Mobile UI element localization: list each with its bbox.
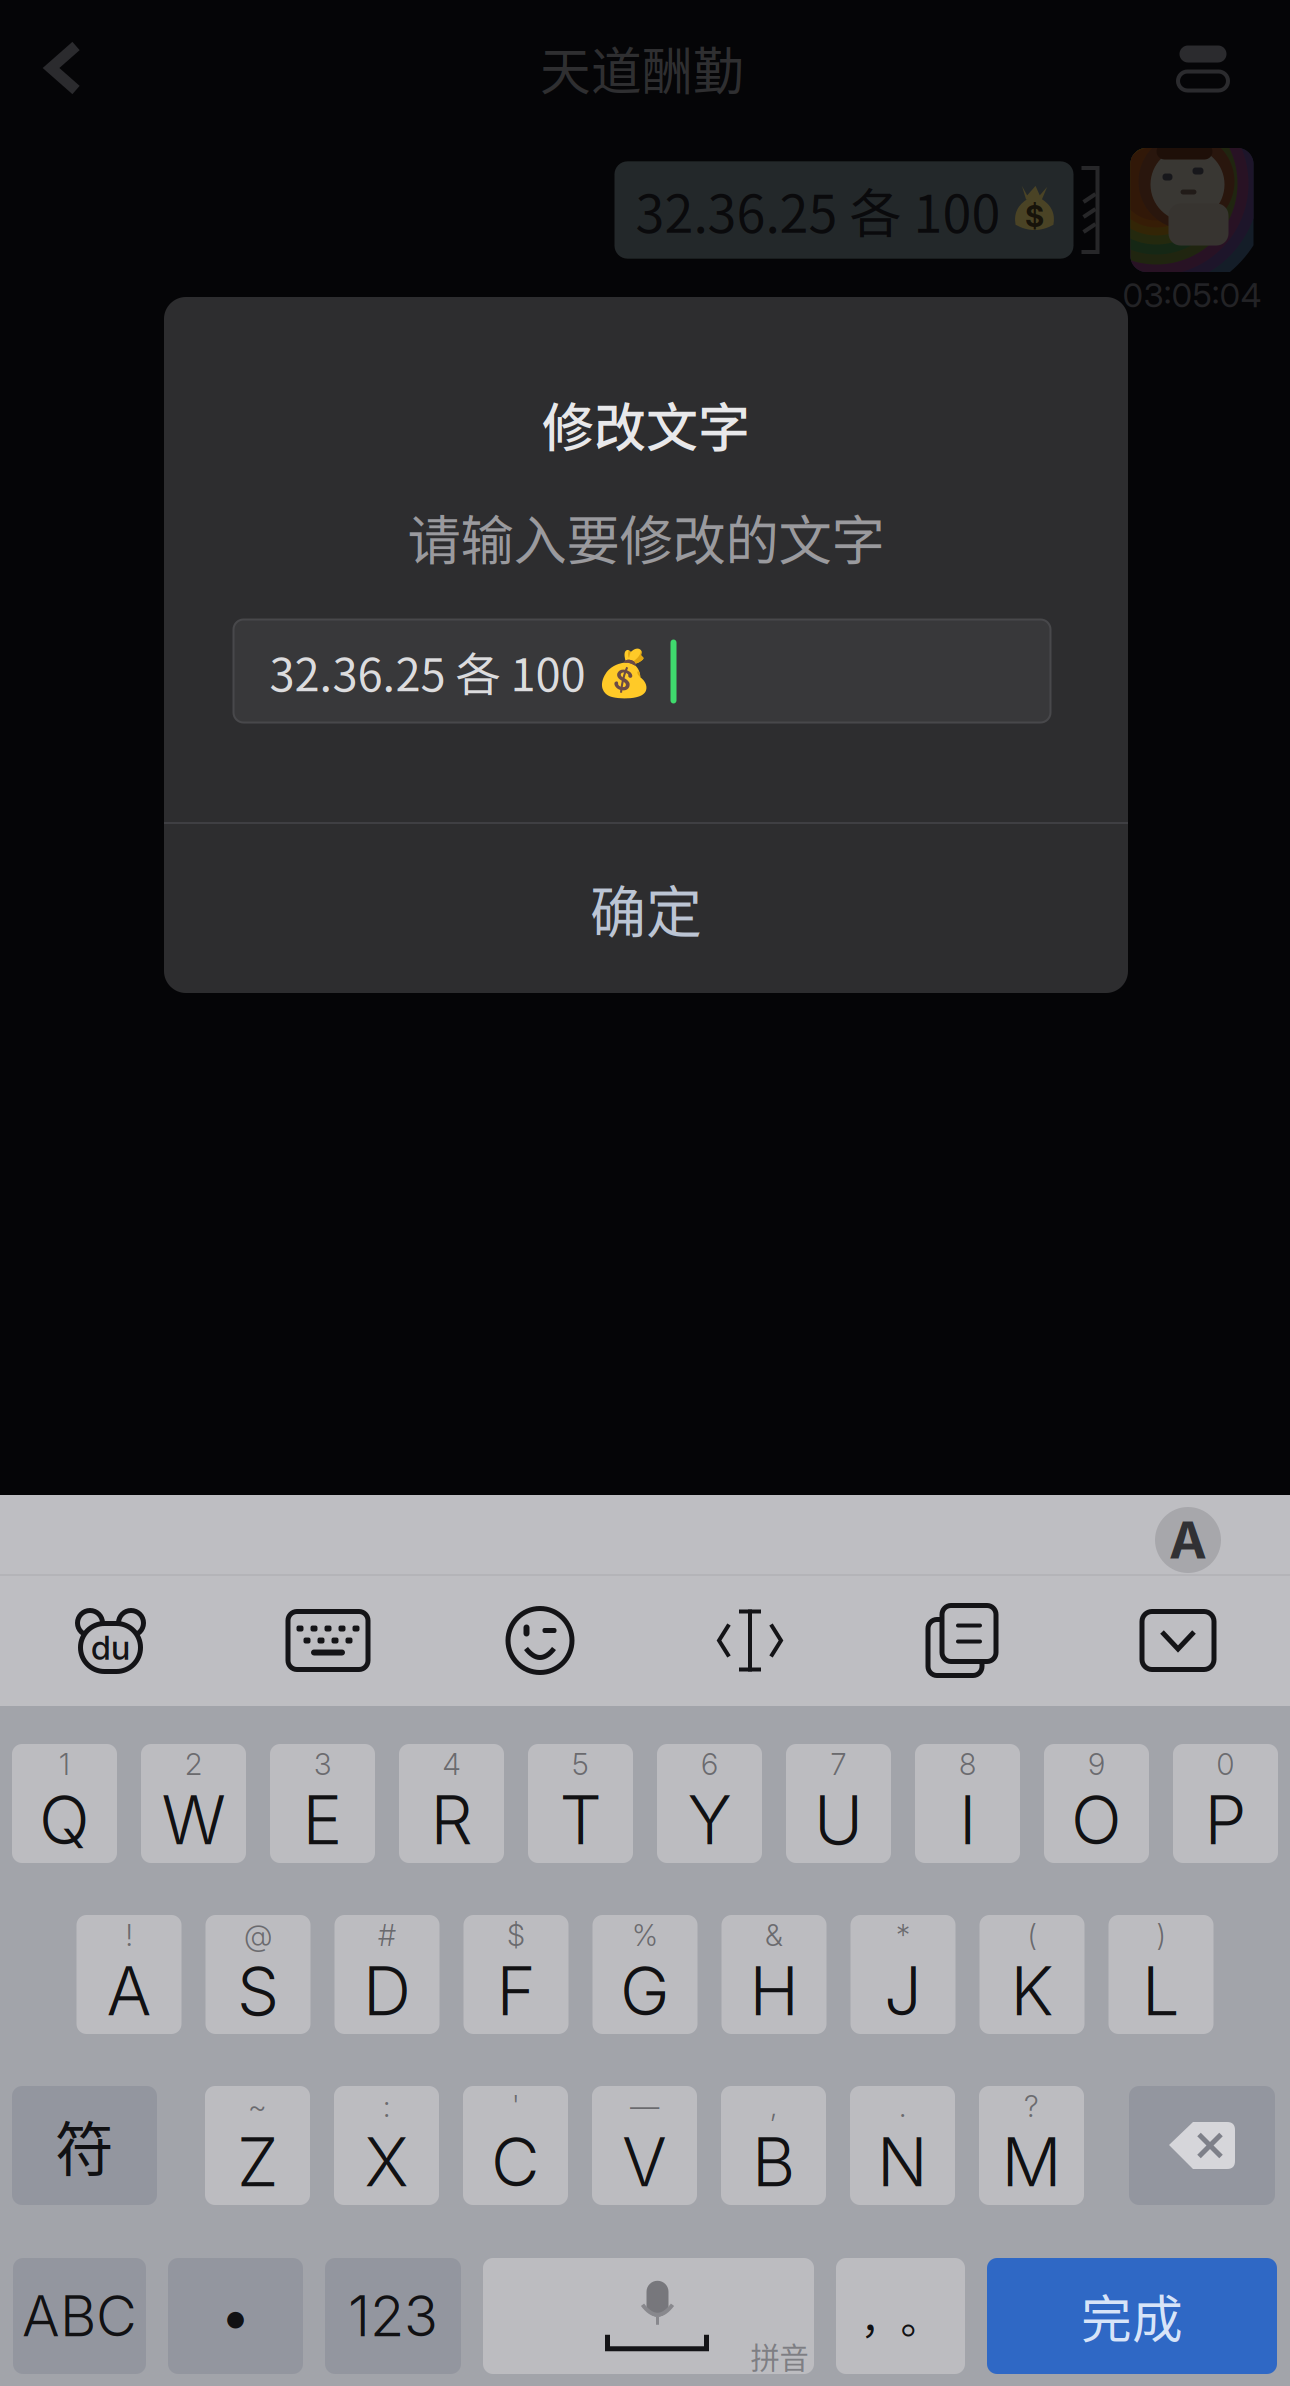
staticText: 3 [314, 1747, 331, 1782]
button[interactable]: % [592, 1915, 697, 2034]
button[interactable]: ? [979, 2086, 1084, 2205]
button[interactable]: Clipboard [882, 1580, 1042, 1700]
staticText: & [765, 1918, 783, 1953]
button[interactable]: • [168, 2258, 303, 2374]
button[interactable]: 123 [325, 2258, 461, 2374]
staticText: ' [512, 2089, 519, 2124]
staticText: 32.36.25 各 100 💰 [269, 639, 651, 704]
staticText: Z [237, 2122, 278, 2202]
staticText: A [106, 1951, 151, 2031]
button[interactable]: 6 [657, 1744, 762, 1863]
button[interactable]: ，。 [836, 2258, 965, 2374]
button[interactable]: Emoji [460, 1580, 620, 1700]
staticText: 符 [55, 2103, 114, 2188]
staticText: ，。 [860, 2287, 940, 2345]
staticText: G [620, 1951, 670, 2031]
staticText: . [899, 2089, 906, 2124]
staticText: 4 [442, 1747, 460, 1782]
staticText: F [496, 1951, 535, 2031]
staticText: K [1010, 1951, 1053, 2031]
button[interactable]: # [334, 1915, 439, 2034]
staticText: L [1142, 1951, 1180, 2031]
staticText: Y [687, 1780, 731, 1860]
staticText: : [383, 2089, 390, 2124]
staticText: 1 [59, 1747, 70, 1782]
button[interactable]: Chat settings [1145, 10, 1261, 126]
staticText: 7 [830, 1747, 846, 1782]
staticText: P [1204, 1780, 1246, 1860]
staticText: , [770, 2089, 777, 2124]
staticText: C [491, 2122, 540, 2202]
staticText: E [302, 1780, 342, 1860]
staticText: R [430, 1780, 472, 1860]
button[interactable]: 3 [270, 1744, 375, 1863]
staticText: ~ [248, 2089, 267, 2124]
button[interactable]: ABC [13, 2258, 146, 2374]
button[interactable]: Move cursor [670, 1580, 830, 1700]
button[interactable]: : [334, 2086, 439, 2205]
button[interactable]: @ [205, 1915, 310, 2034]
staticText: $ [507, 1918, 525, 1953]
staticText: * [896, 1918, 910, 1953]
staticText: T [559, 1780, 601, 1860]
button[interactable]: ~ [205, 2086, 310, 2205]
staticText: 03:05:04 [1122, 275, 1261, 315]
staticText: • [220, 2284, 250, 2348]
button[interactable]: 4 [399, 1744, 504, 1863]
button[interactable] [1129, 2086, 1275, 2205]
button[interactable]: * [850, 1915, 955, 2034]
staticText: @ [244, 1918, 272, 1953]
staticText: 6 [701, 1747, 718, 1782]
button[interactable]: ) [1108, 1915, 1213, 2034]
staticText: % [632, 1918, 658, 1953]
button[interactable]: 拼音 [483, 2258, 814, 2374]
staticText: S [237, 1951, 279, 2031]
staticText: # [378, 1918, 396, 1953]
staticText: 2 [185, 1747, 202, 1782]
button[interactable]: . [850, 2086, 955, 2205]
button[interactable]: Keyboard layout [248, 1580, 408, 1700]
staticText: W [161, 1780, 225, 1860]
staticText: J [884, 1951, 922, 2031]
staticText: ) [1156, 1918, 1165, 1953]
staticText: M [1001, 2122, 1061, 2202]
staticText: — [630, 2089, 659, 2124]
button[interactable]: 2 [141, 1744, 246, 1863]
staticText: 8 [959, 1747, 976, 1782]
button[interactable]: & [721, 1915, 826, 2034]
button[interactable]: ( [979, 1915, 1084, 2034]
button[interactable]: 确定 [164, 824, 1128, 992]
button[interactable]: 完成 [987, 2258, 1277, 2374]
button[interactable]: 符 [12, 2086, 157, 2205]
staticText: 完成 [1081, 2279, 1183, 2353]
button[interactable]: 1 [12, 1744, 117, 1863]
button[interactable]: 0 [1173, 1744, 1278, 1863]
button[interactable]: Baidu input [30, 1580, 190, 1700]
staticText: 修改文字 [542, 386, 750, 462]
button[interactable]: 7 [786, 1744, 891, 1863]
button[interactable]: $ [463, 1915, 568, 2034]
staticText: du [91, 1627, 130, 1668]
button[interactable]: 8 [915, 1744, 1020, 1863]
button[interactable]: ! [76, 1915, 181, 2034]
button[interactable]: , [721, 2086, 826, 2205]
staticText: B [752, 2122, 795, 2202]
staticText: ( [1027, 1918, 1036, 1953]
staticText: U [814, 1780, 863, 1860]
staticText: X [364, 2122, 408, 2202]
staticText: I [959, 1780, 976, 1860]
staticText: ABC [22, 2282, 137, 2350]
staticText: 32.36.25 各 100 [635, 172, 1000, 248]
staticText: 5 [572, 1747, 589, 1782]
staticText: N [877, 2122, 928, 2202]
staticText: $ [1025, 198, 1044, 234]
button[interactable]: Back [6, 10, 122, 126]
button[interactable]: 5 [528, 1744, 633, 1863]
button[interactable]: Hide keyboard [1098, 1580, 1258, 1700]
button[interactable]: ' [463, 2086, 568, 2205]
button[interactable]: — [592, 2086, 697, 2205]
staticText: 123 [348, 2282, 438, 2350]
button[interactable]: 9 [1044, 1744, 1149, 1863]
staticText: ? [1024, 2089, 1039, 2124]
staticText: 请输入要修改的文字 [407, 498, 884, 576]
